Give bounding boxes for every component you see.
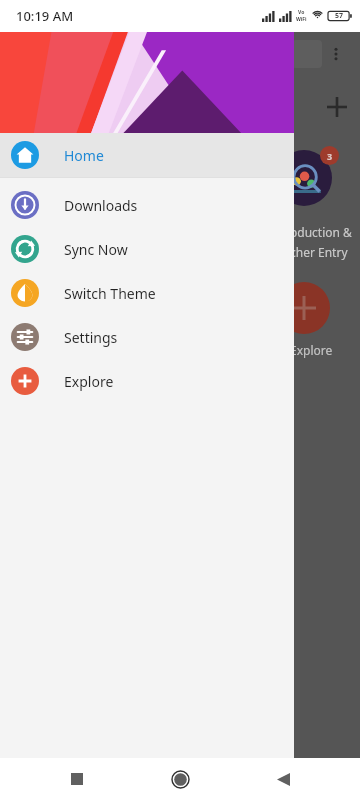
button[interactable]: More options xyxy=(322,40,350,68)
staticText: Explore xyxy=(290,342,333,358)
staticText: Explore xyxy=(64,372,114,391)
staticText: Downloads xyxy=(64,196,138,215)
button[interactable]: Switch Theme xyxy=(0,271,294,315)
staticText: Vo xyxy=(298,9,305,16)
staticText: Sync Now xyxy=(64,240,128,259)
button[interactable]: Home xyxy=(163,762,197,796)
staticText: 10:19 AM xyxy=(16,7,74,25)
button[interactable]: Explore xyxy=(0,359,294,403)
staticText: Switch Theme xyxy=(64,284,156,303)
button[interactable]: Back xyxy=(266,762,300,796)
staticText: Settings xyxy=(64,328,118,347)
button[interactable]: Home xyxy=(0,133,294,177)
button[interactable]: Downloads xyxy=(0,183,294,227)
staticText: oduction & xyxy=(290,224,352,240)
button[interactable]: Sync Now xyxy=(0,227,294,271)
staticText: cher Entry xyxy=(290,244,348,260)
staticText: 57 xyxy=(335,11,344,21)
staticText: WiFi xyxy=(296,16,307,23)
button[interactable]: Add xyxy=(322,92,352,122)
button[interactable]: Settings xyxy=(0,315,294,359)
staticText: Home xyxy=(64,146,104,165)
button[interactable]: Explore xyxy=(278,282,330,334)
staticText: 3 xyxy=(327,150,333,162)
button[interactable]: Production and voucher entry xyxy=(276,150,332,206)
button[interactable]: Recent apps xyxy=(60,762,94,796)
